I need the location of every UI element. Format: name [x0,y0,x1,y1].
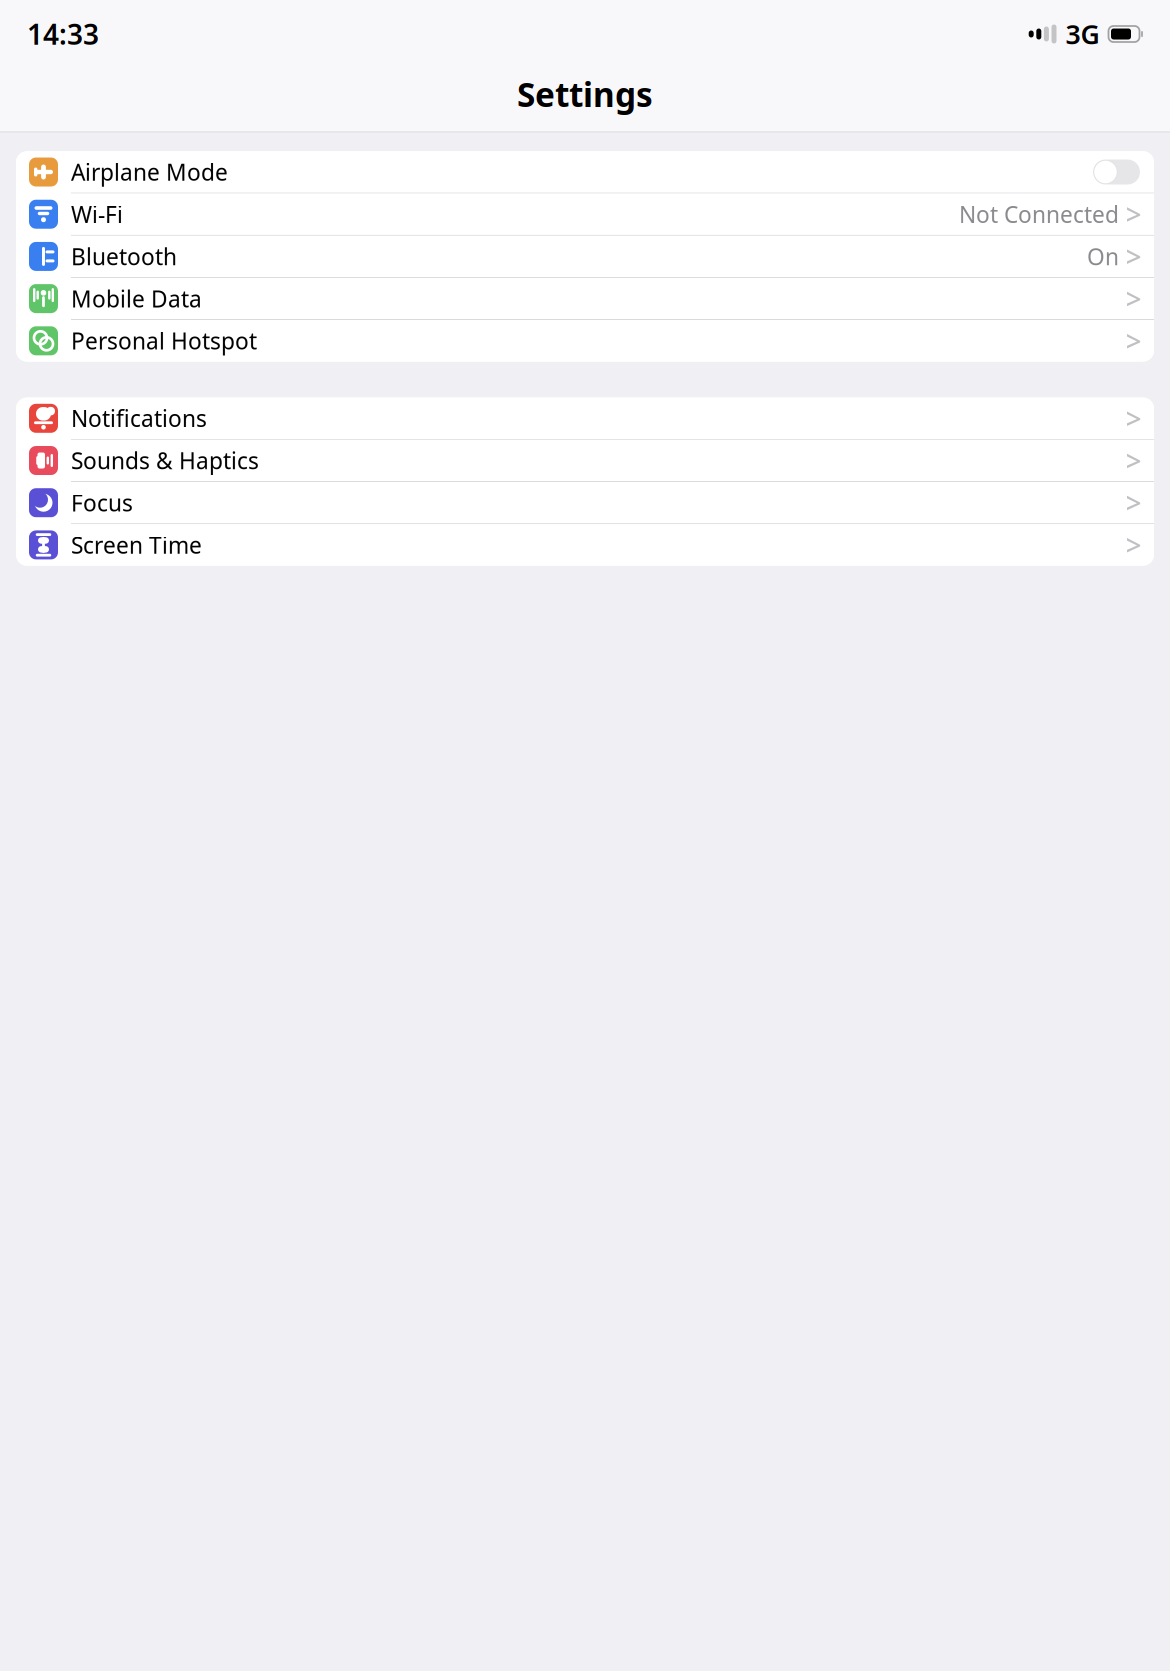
button[interactable]: Screen Time [16,524,1154,566]
button[interactable]: Bluetooth [16,236,1154,277]
staticText: > [1125,322,1141,359]
staticText: > [1125,196,1141,233]
button[interactable]: Airplane Mode [16,151,1154,193]
staticText: > [1125,238,1141,275]
staticText: Airplane Mode [71,157,228,187]
staticText: > [1125,484,1141,521]
button[interactable]: Focus [16,482,1154,523]
staticText: Personal Hotspot [71,326,257,356]
staticText: On [1087,241,1119,271]
staticText: Notifications [71,403,207,433]
staticText: > [1125,400,1141,437]
staticText: Sounds & Haptics [71,445,259,476]
staticText: Screen Time [71,530,202,560]
staticText: Focus [71,488,133,518]
staticText: Mobile Data [71,284,202,314]
staticText: 14:33 [27,15,99,53]
button[interactable]: Sounds & Haptics [16,440,1154,481]
staticText: 3G [1065,16,1099,52]
staticText: Wi-Fi [71,199,123,229]
button[interactable]: Notifications [16,398,1154,439]
staticText: Settings [517,72,653,116]
staticText: Not Connected [959,199,1119,229]
button[interactable]: Personal Hotspot [16,320,1154,362]
staticText: > [1125,442,1141,479]
button[interactable]: Wi-Fi [16,193,1154,235]
staticText: > [1125,526,1141,563]
staticText: > [1125,280,1141,317]
button[interactable]: Mobile Data [16,278,1154,319]
staticText: Bluetooth [71,241,177,271]
